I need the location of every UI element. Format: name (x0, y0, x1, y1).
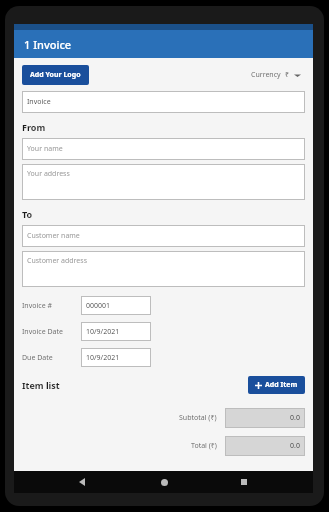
staticText: Add Item (265, 380, 298, 390)
staticText: From (22, 121, 46, 133)
button[interactable]: 10/9/2021 (81, 348, 151, 367)
staticText: Add Your Logo (30, 70, 81, 80)
button[interactable]: Customer address (22, 251, 305, 287)
button[interactable]: Currency (251, 70, 305, 80)
button[interactable]: Customer name (22, 225, 305, 247)
button[interactable]: 0.0 (225, 408, 305, 428)
staticText: Customer address (27, 256, 88, 266)
button[interactable]: 0.0 (225, 436, 305, 456)
button[interactable]: Your name (22, 138, 305, 160)
staticText: 000001 (86, 301, 111, 311)
button[interactable]: 1 Invoice (14, 30, 313, 58)
staticText: Subtotal (₹) (179, 413, 217, 423)
staticText: Customer name (27, 231, 80, 241)
staticText: To (22, 208, 33, 220)
staticText: Invoice Date (22, 327, 63, 337)
staticText: Currency (251, 70, 281, 80)
staticText: Total (₹) (191, 441, 217, 451)
staticText: 0.0 (290, 413, 300, 423)
staticText: 10/9/2021 (86, 327, 120, 337)
staticText: Your name (27, 144, 63, 154)
staticText: Due Date (22, 353, 53, 363)
staticText: Invoice # (22, 301, 52, 311)
button[interactable]: 10/9/2021 (81, 322, 151, 341)
button[interactable]: Back (72, 471, 94, 493)
staticText: 10/9/2021 (86, 353, 120, 363)
button[interactable]: Your address (22, 164, 305, 200)
staticText: ₹ (285, 70, 290, 80)
staticText: Item list (22, 379, 60, 391)
button[interactable]: Recents (233, 471, 255, 493)
button[interactable]: 000001 (81, 296, 151, 315)
staticText: Invoice (27, 97, 51, 107)
button[interactable]: Home (153, 471, 175, 493)
button[interactable]: Invoice (22, 91, 305, 113)
staticText: 1 Invoice (24, 37, 72, 52)
staticText: 0.0 (290, 441, 300, 451)
button[interactable]: Add Item (248, 376, 305, 394)
staticText: Your address (27, 169, 70, 179)
button[interactable]: Add Your Logo (22, 65, 89, 85)
